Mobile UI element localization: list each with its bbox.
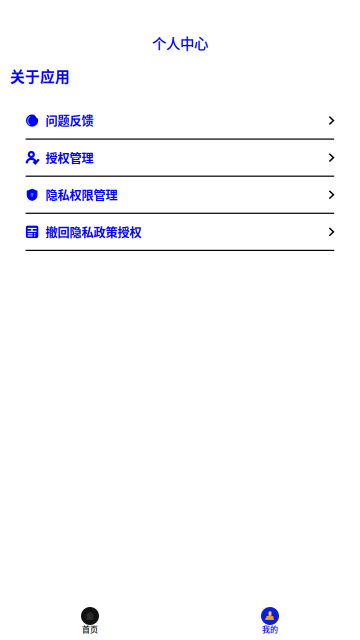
- staticText: 撤回隐私政策授权: [46, 223, 142, 241]
- staticText: 个人中心: [152, 32, 208, 53]
- staticText: 授权管理: [46, 149, 94, 166]
- staticText: 问题反馈: [46, 112, 94, 129]
- staticText: 我的: [262, 623, 278, 635]
- button[interactable]: 授权管理: [26, 140, 334, 176]
- staticText: 首页: [82, 623, 98, 635]
- button[interactable]: 我的: [180, 606, 360, 634]
- button[interactable]: 撤回隐私政策授权: [26, 214, 334, 250]
- button[interactable]: 首页: [0, 606, 180, 634]
- staticText: 关于应用: [10, 65, 70, 87]
- button[interactable]: 隐私权限管理: [26, 177, 334, 213]
- button[interactable]: 问题反馈: [26, 103, 334, 138]
- staticText: 隐私权限管理: [46, 186, 118, 204]
